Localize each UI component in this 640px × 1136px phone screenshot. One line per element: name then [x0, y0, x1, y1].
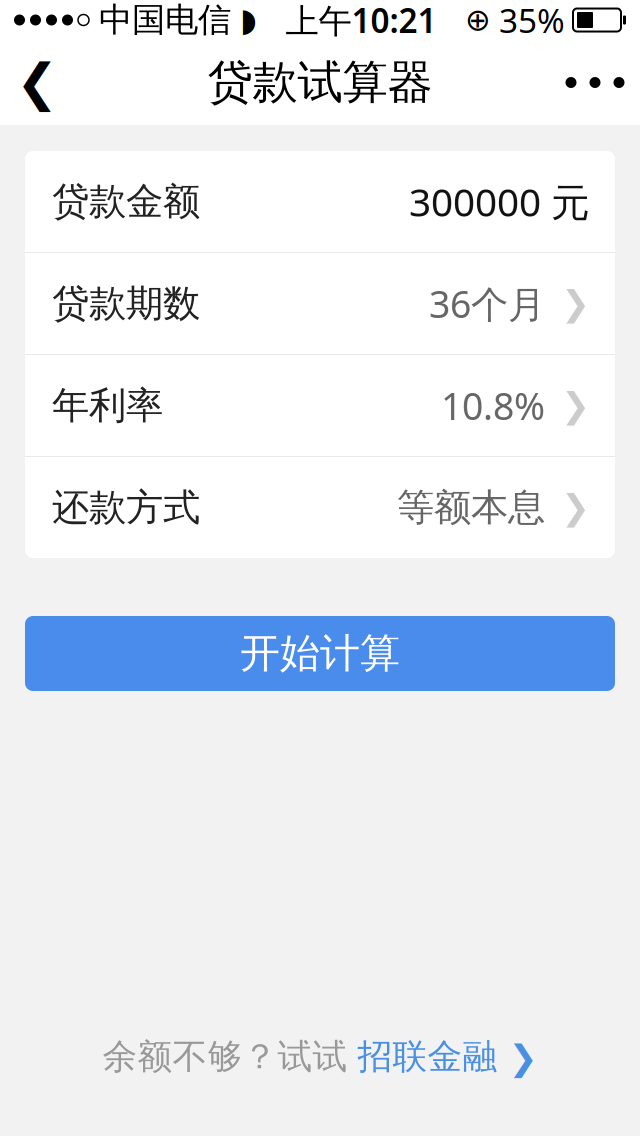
button[interactable]: 贷款期数	[25, 253, 615, 354]
staticText: 贷款金额	[52, 179, 200, 224]
button[interactable]: 开始计算	[25, 616, 615, 691]
staticText: ◗	[240, 2, 257, 38]
staticText: 开始计算	[240, 629, 400, 678]
button[interactable]: 返回	[0, 40, 74, 125]
staticText: 300000 元	[409, 176, 590, 227]
button[interactable]: 年利率	[25, 355, 615, 456]
button[interactable]: 更多	[550, 40, 640, 125]
staticText: 10.8%	[441, 381, 545, 430]
staticText: 招联金融 ❯	[357, 1035, 537, 1078]
staticText: 上午10:21	[285, 0, 436, 42]
staticText: 贷款试算器	[207, 55, 432, 110]
staticText: ❯	[561, 488, 590, 527]
button[interactable]: 还款方式	[25, 457, 615, 558]
staticText: ⊕	[465, 3, 491, 37]
staticText: 还款方式	[52, 485, 200, 530]
staticText: 36个月	[429, 279, 545, 328]
staticText: ❯	[561, 386, 590, 425]
button[interactable]: 余额不够？试试	[82, 1025, 557, 1088]
staticText: 贷款期数	[52, 281, 200, 326]
staticText: 等额本息	[397, 485, 545, 530]
staticText: ❯	[561, 284, 590, 323]
staticText: 35%	[499, 0, 565, 42]
staticText: 中国电信	[99, 0, 231, 40]
staticText: ❮	[16, 54, 58, 111]
staticText: 余额不够？试试	[102, 1035, 357, 1078]
staticText: 年利率	[52, 383, 163, 428]
